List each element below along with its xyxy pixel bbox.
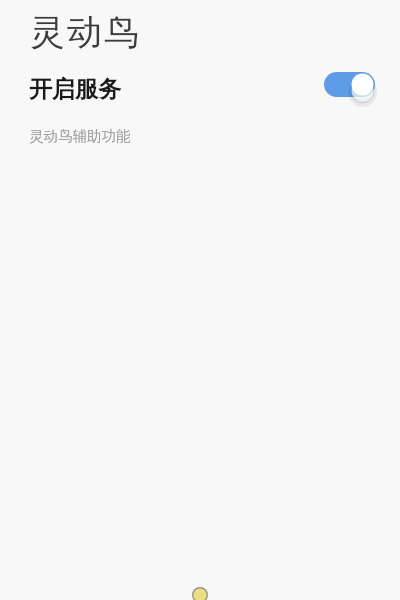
button[interactable]: 开启服务 (0, 67, 400, 111)
staticText: 灵动鸟辅助功能 (29, 127, 131, 145)
staticText: 开启服务 (29, 75, 121, 104)
button[interactable]: Toggle service (324, 72, 376, 106)
staticText: 灵动鸟 (29, 10, 140, 54)
other: Floating bubble (192, 587, 208, 600)
